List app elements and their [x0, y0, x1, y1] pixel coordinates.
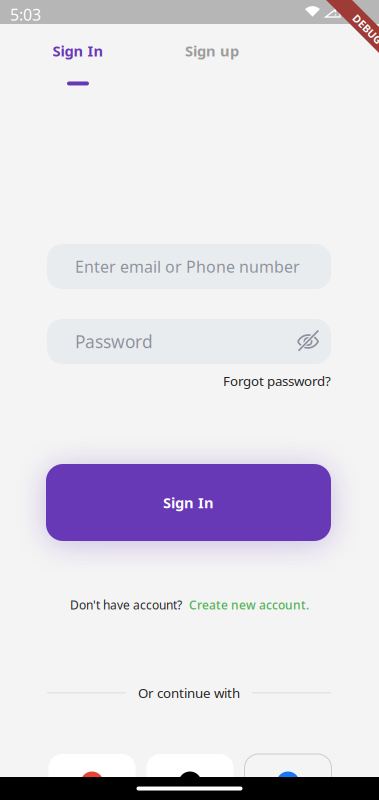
staticText: Sign up — [185, 41, 239, 60]
staticText: Sign In — [52, 41, 103, 60]
button[interactable]: Sign In — [46, 464, 331, 541]
button[interactable]: Continue with Google — [48, 754, 135, 800]
button[interactable]: Create new account. — [189, 597, 309, 613]
staticText: Forgot password? — [223, 372, 331, 390]
staticText: Create new account. — [189, 597, 309, 613]
button[interactable]: Forgot password? — [223, 372, 331, 390]
staticText: Don't have account? — [70, 597, 182, 613]
button[interactable]: Sign In — [20, 33, 136, 93]
staticText: Sign In — [163, 493, 214, 512]
staticText: 5:03 — [10, 4, 41, 25]
button[interactable]: Enter email or Phone number — [47, 244, 331, 289]
button[interactable]: Continue with Apple — [146, 754, 233, 800]
staticText: Enter email or Phone number — [75, 256, 300, 277]
staticText: DEBUG — [349, 22, 379, 36]
staticText: Password — [75, 330, 153, 353]
button[interactable]: Password — [47, 319, 331, 364]
button[interactable]: Sign up — [154, 33, 270, 93]
staticText: Or continue with — [138, 684, 240, 702]
button[interactable]: Continue with Facebook — [244, 754, 331, 800]
